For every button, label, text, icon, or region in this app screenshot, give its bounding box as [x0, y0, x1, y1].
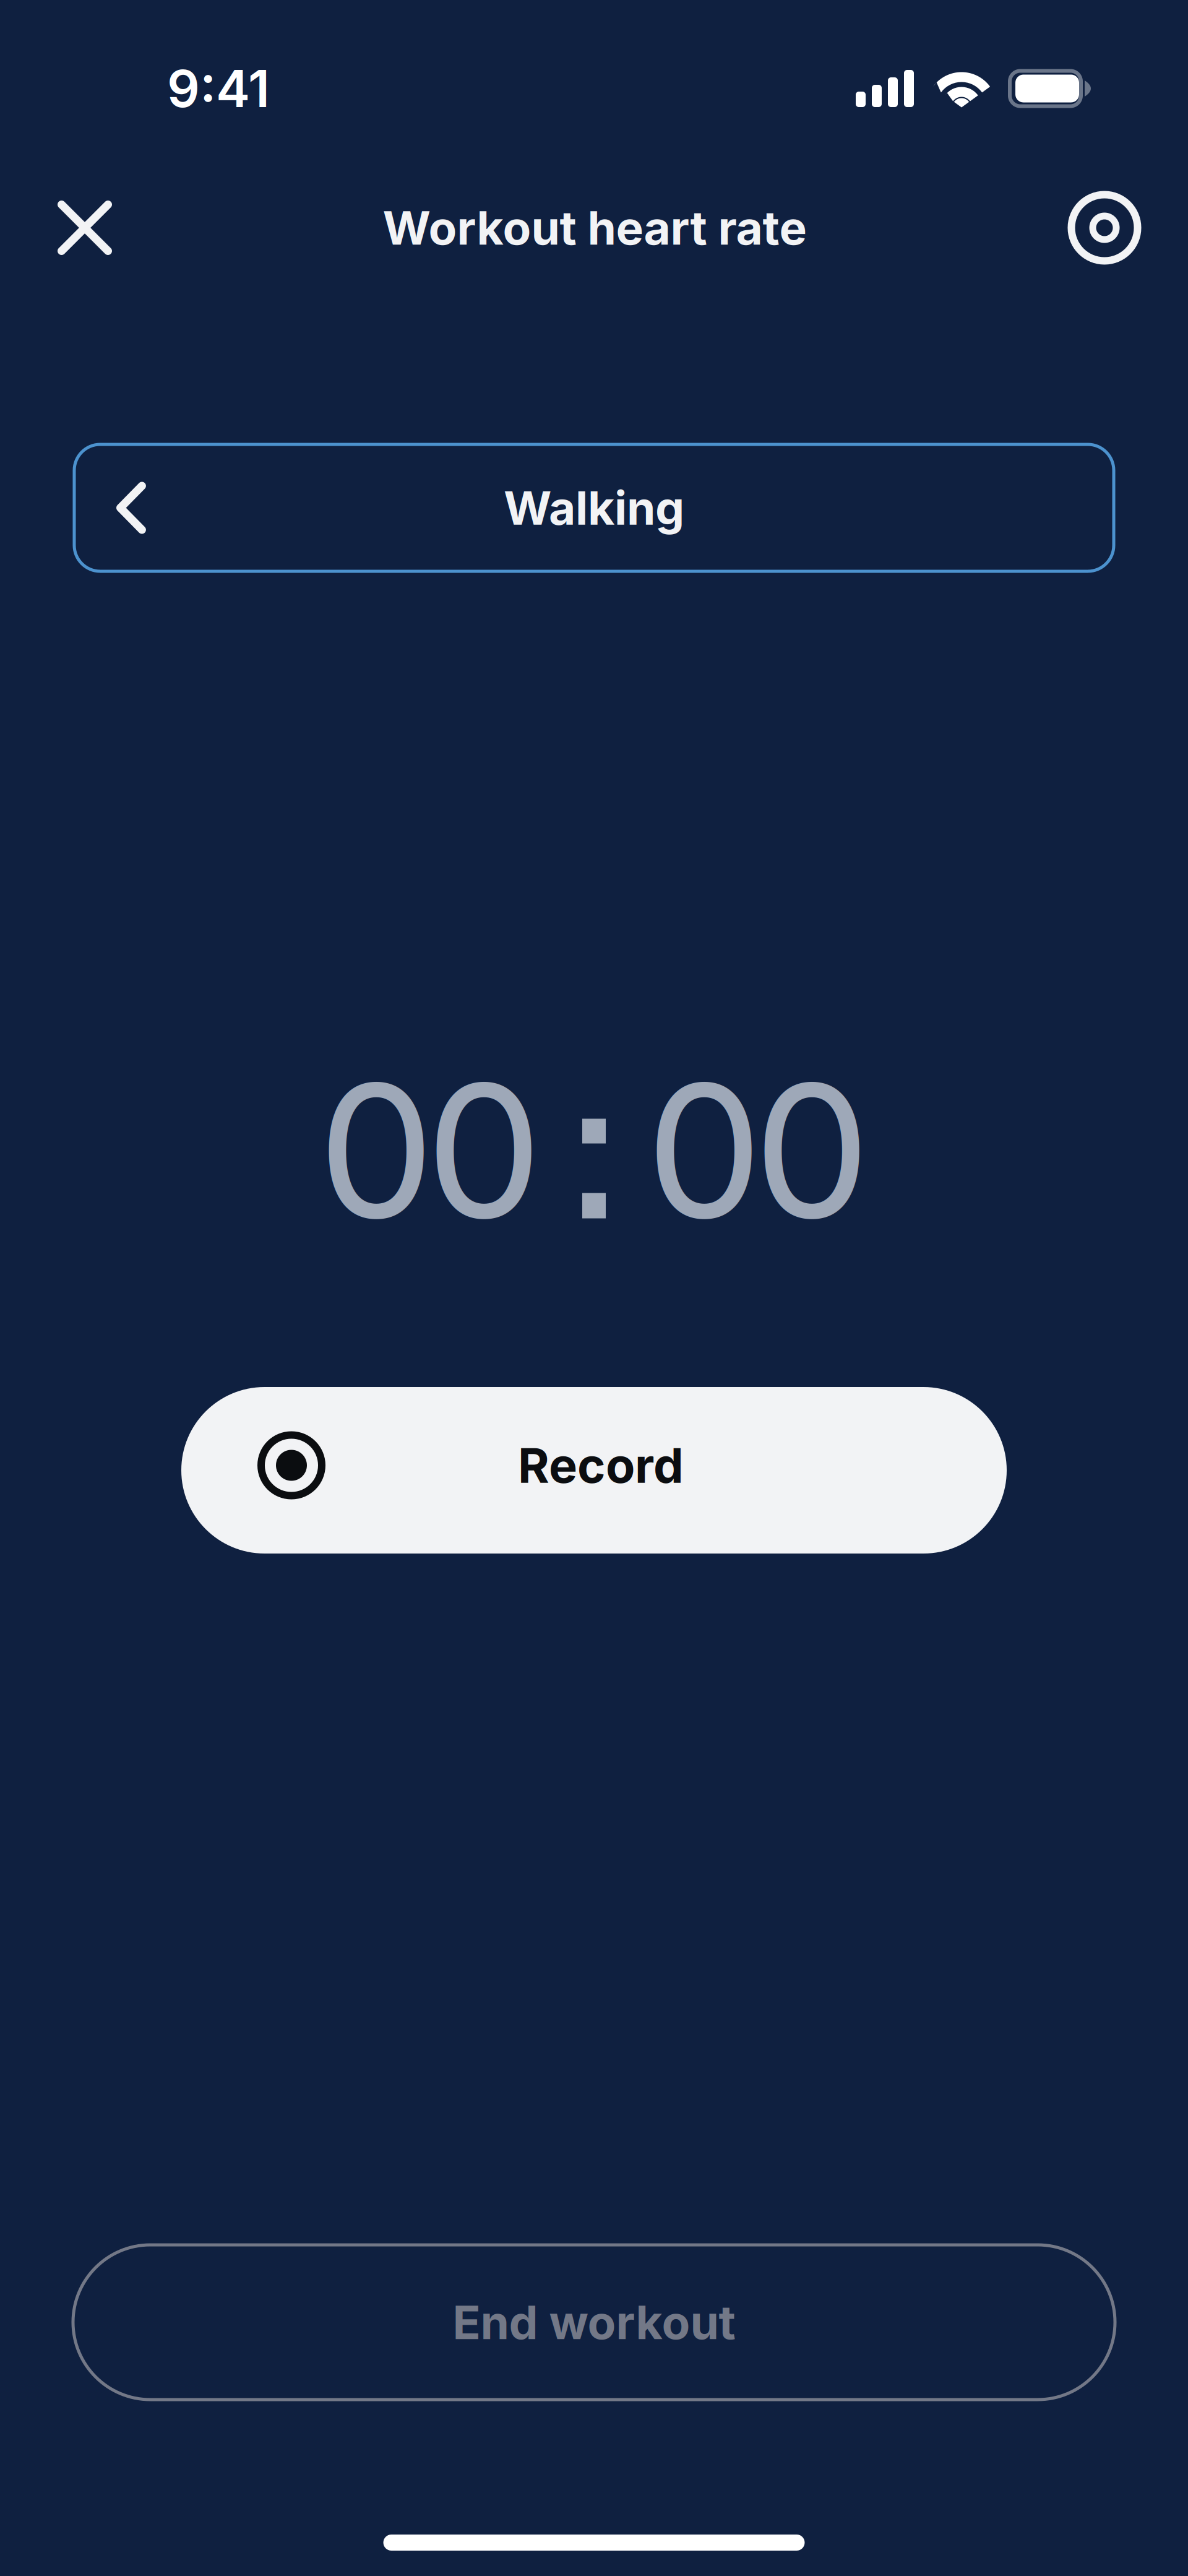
staticText: Workout heart rate	[383, 200, 807, 256]
button[interactable]: End workout	[73, 2245, 1115, 2400]
button[interactable]: Heart rate monitor	[1058, 181, 1151, 274]
staticText: Walking	[504, 480, 684, 536]
button[interactable]: Record	[181, 1387, 1007, 1554]
button[interactable]: Walking	[74, 444, 1114, 571]
staticText: End workout	[453, 2294, 735, 2350]
staticText: 9:41	[167, 58, 270, 119]
staticText: Record	[518, 1436, 684, 1494]
staticText: 00	[322, 1040, 538, 1261]
button[interactable]: Close	[38, 181, 131, 274]
staticText: 00	[650, 1040, 866, 1261]
